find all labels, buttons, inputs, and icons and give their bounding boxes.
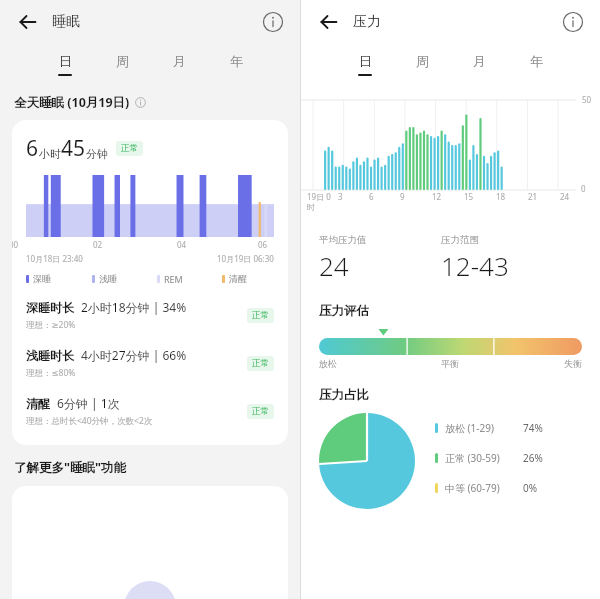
staticText: 月 (173, 53, 186, 69)
button[interactable]: 月 (150, 44, 207, 84)
button[interactable]: 周 (393, 44, 450, 84)
button[interactable]: 清醒 (26, 395, 274, 427)
staticText: REM (164, 273, 183, 285)
staticText: 深睡时长 (26, 300, 74, 315)
staticText: 18 (496, 191, 528, 202)
staticText: 45 (61, 134, 86, 163)
staticText: 深睡 (33, 273, 51, 284)
staticText: 正常 (252, 358, 269, 369)
staticText: 全天睡眠 (10月19日) (14, 94, 130, 111)
staticText: 10月19日 06:30 (217, 253, 274, 264)
staticText: 浅睡时长 (26, 348, 74, 363)
staticText: 中等 (60-79) (445, 481, 523, 495)
staticText: 6 (369, 191, 400, 202)
staticText: 小时 (39, 147, 61, 161)
staticText: 日 (59, 53, 72, 69)
button[interactable]: Back (12, 6, 44, 38)
button[interactable] (12, 486, 288, 599)
staticText: 月 (473, 53, 486, 69)
button[interactable]: 周 (93, 44, 150, 84)
staticText: 3 (338, 191, 369, 202)
staticText: 9 (400, 191, 432, 202)
staticText: 正常 (30-59) (445, 451, 523, 465)
staticText: 24 (560, 191, 592, 202)
staticText: 清醒 (229, 273, 247, 284)
staticText: 24 (319, 248, 349, 283)
staticText: 6分钟 | 1次 (57, 395, 120, 411)
staticText: 02 (93, 239, 103, 250)
staticText: 50 (582, 94, 592, 105)
staticText: 理想：≤80% (26, 367, 76, 379)
staticText: 压力评估 (319, 303, 369, 319)
button[interactable]: 浅睡时长 (26, 347, 274, 379)
button[interactable]: Back (313, 6, 345, 38)
button[interactable]: 月 (450, 44, 507, 84)
button[interactable]: 日 (337, 44, 393, 84)
staticText: 年 (530, 53, 543, 69)
staticText: 06 (258, 239, 268, 250)
staticText: 年 (230, 53, 243, 69)
staticText: 74% (523, 421, 543, 435)
staticText: 日 (359, 53, 372, 69)
staticText: 12-43 (441, 248, 509, 283)
staticText: 理想：总时长<40分钟，次数<2次 (26, 415, 153, 427)
staticText: 放松 (1-29) (445, 421, 523, 435)
button[interactable]: Info (260, 9, 286, 35)
staticText: 04 (177, 239, 187, 250)
staticText: 正常 (121, 143, 138, 154)
staticText: 睡眠 (52, 13, 80, 31)
staticText: 正常 (252, 406, 269, 417)
staticText: 周 (416, 53, 429, 69)
staticText: 压力占比 (319, 387, 369, 403)
staticText: 失衡 (494, 358, 582, 369)
staticText: 15 (464, 191, 496, 202)
staticText: 了解更多"睡眠"功能 (14, 459, 126, 476)
staticText: 理想：≥20% (26, 319, 76, 331)
staticText: 26% (523, 451, 543, 465)
button[interactable]: 深睡时长 (26, 299, 274, 331)
staticText: 清醒 (26, 396, 50, 411)
staticText: 21 (528, 191, 560, 202)
staticText: 0% (523, 481, 538, 495)
staticText: 10月18日 23:40 (26, 253, 83, 264)
staticText: 正常 (252, 310, 269, 321)
button[interactable]: 年 (207, 44, 264, 84)
staticText: 平均压力值 (319, 234, 367, 246)
staticText: 分钟 (86, 147, 108, 161)
staticText: 浅睡 (99, 273, 117, 284)
staticText: 00 (12, 239, 19, 250)
staticText: 19日 0时 (307, 191, 338, 212)
button[interactable]: Info (560, 9, 586, 35)
button[interactable]: 日 (36, 44, 93, 84)
staticText: 放松 (319, 358, 406, 369)
staticText: 0 (581, 183, 586, 194)
staticText: 压力范围 (441, 234, 479, 246)
staticText: 平衡 (406, 358, 494, 369)
staticText: 2小时18分钟 | 34% (81, 299, 187, 315)
button[interactable]: 年 (507, 44, 564, 84)
staticText: 4小时27分钟 | 66% (81, 347, 187, 363)
staticText: 周 (116, 53, 129, 69)
staticText: 压力 (353, 13, 381, 31)
staticText: 12 (432, 191, 464, 202)
staticText: 6 (26, 134, 39, 163)
